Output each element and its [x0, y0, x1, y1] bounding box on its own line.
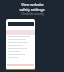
staticText: safety settings	[19, 7, 45, 12]
staticText: Check site security	[21, 12, 44, 16]
staticText: View website	[21, 2, 44, 7]
